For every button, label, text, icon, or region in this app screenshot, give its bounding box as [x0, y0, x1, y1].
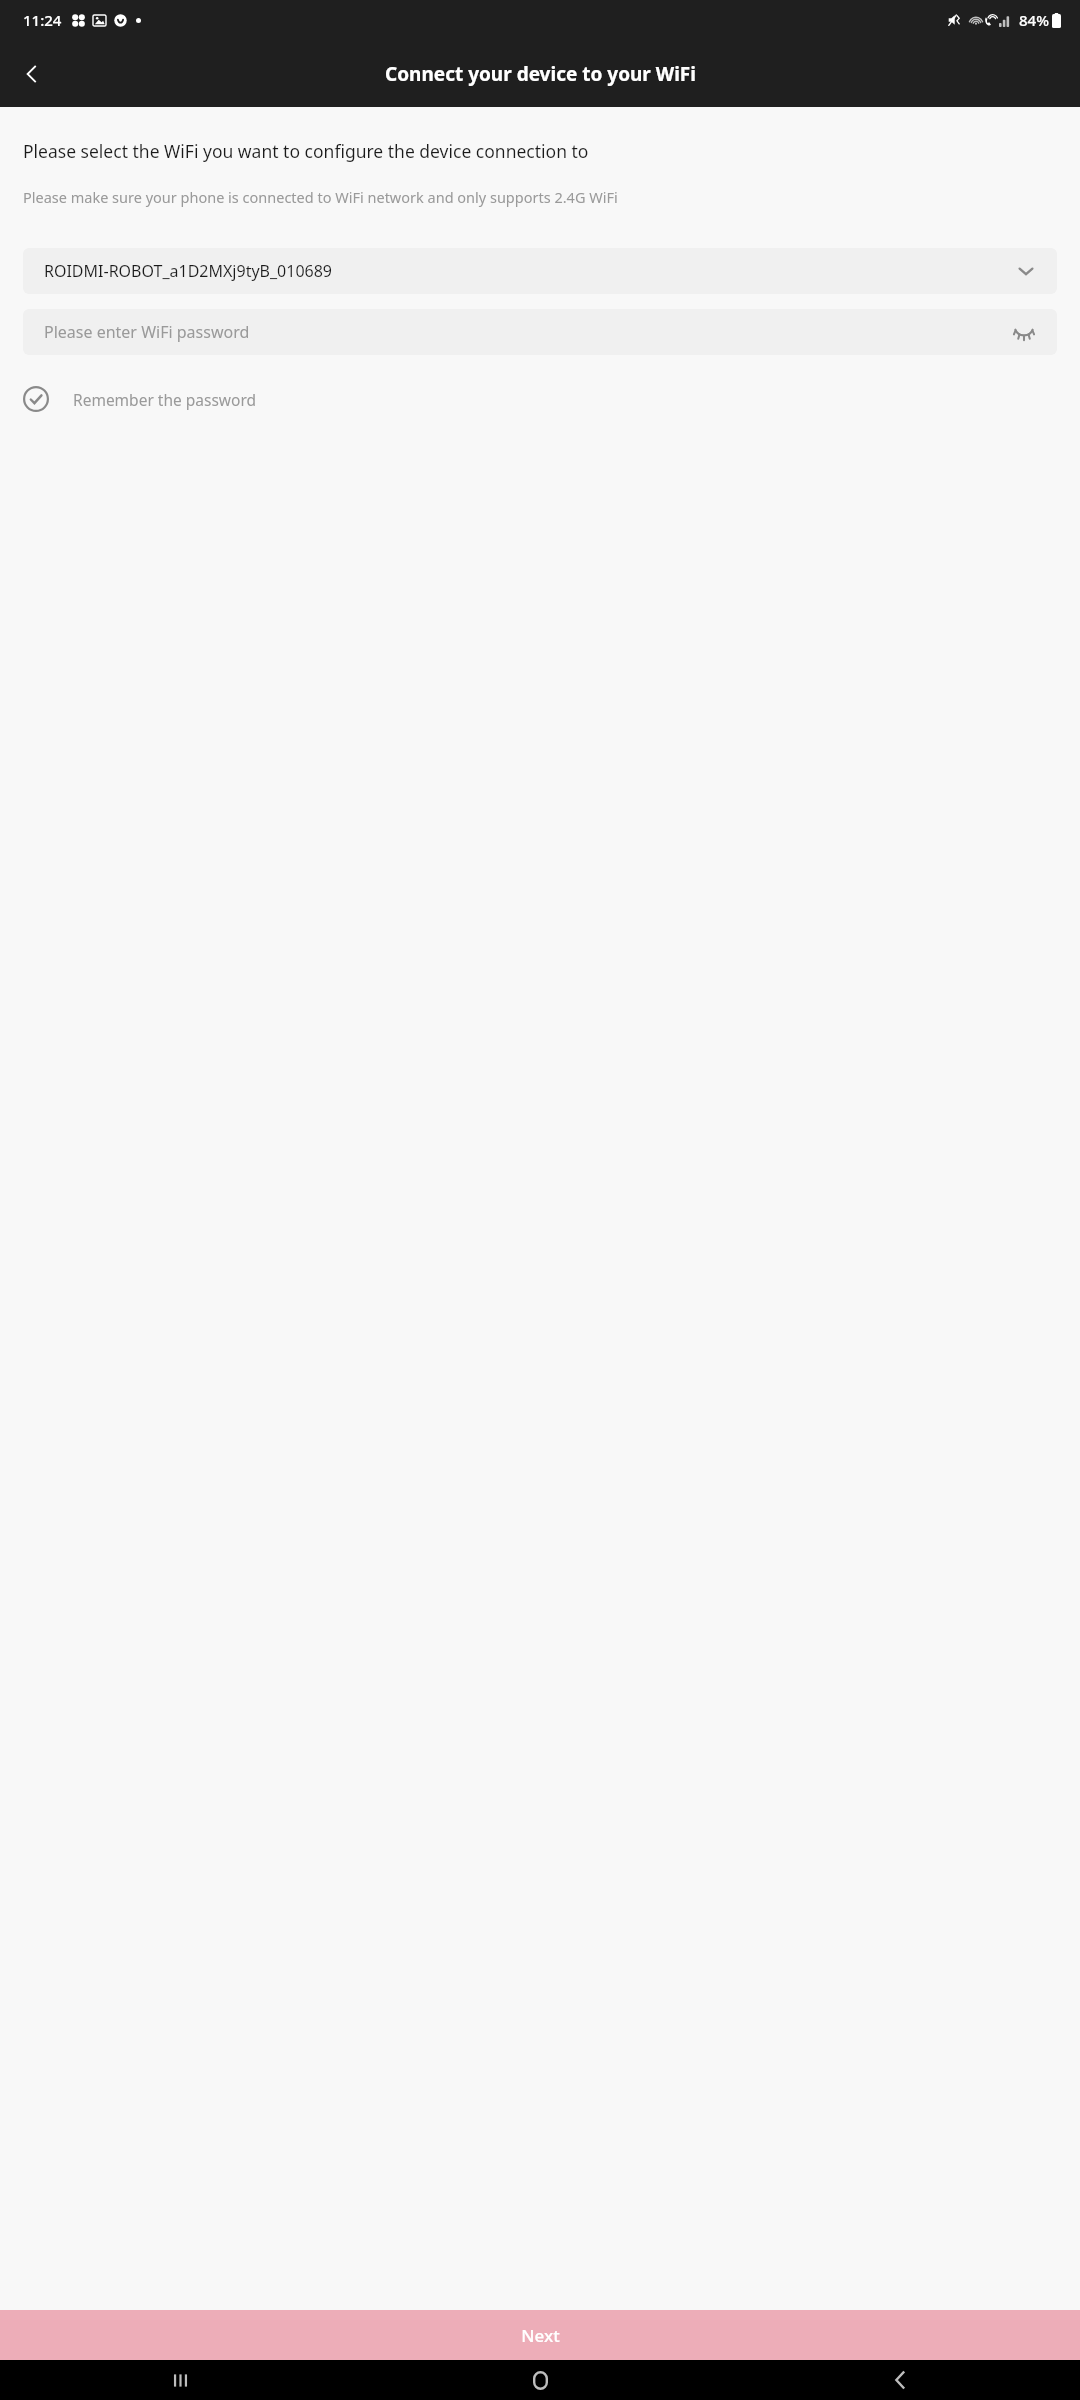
button[interactable]: Show password	[1009, 317, 1039, 347]
staticText: Next	[521, 2324, 560, 2347]
staticText: Connect your device to your WiFi	[385, 61, 696, 87]
staticText: Please select the WiFi you want to confi…	[23, 139, 1057, 163]
button[interactable]: Home	[360, 2360, 720, 2400]
button[interactable]: Remember the password	[23, 379, 273, 419]
button[interactable]: ROIDMI-ROBOT_a1D2MXj9tyB_010689	[23, 248, 1057, 294]
staticText: Remember the password	[73, 389, 257, 410]
button[interactable]: Back	[720, 2360, 1080, 2400]
button[interactable]: Recent apps	[0, 2360, 360, 2400]
staticText: Please make sure your phone is connected…	[23, 187, 1057, 207]
button[interactable]: Please enter WiFi password	[23, 309, 1057, 355]
button[interactable]: Back	[8, 50, 56, 98]
staticText: 11:24	[23, 10, 62, 30]
button[interactable]: Next	[0, 2310, 1080, 2360]
staticText: 84%	[1019, 10, 1049, 30]
staticText: ROIDMI-ROBOT_a1D2MXj9tyB_010689	[44, 260, 1016, 282]
staticText: Please enter WiFi password	[44, 321, 1009, 343]
